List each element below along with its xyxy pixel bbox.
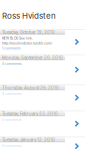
button[interactable]: Monday, September 20, 2010 [0, 55, 85, 85]
button[interactable]: Tuesday, October 19, 2010 [0, 29, 85, 55]
staticText: Thursday, August 26, 2010 [2, 85, 59, 90]
staticText: 0 comments [2, 144, 22, 148]
staticText: http://rosshvidsten.tumblr.com/ [2, 41, 52, 45]
staticText: 0 comments [2, 92, 22, 96]
staticText: NEW BLOG See link. [2, 36, 33, 40]
staticText: 4 comments [2, 62, 22, 66]
staticText: 1 comments [2, 46, 21, 50]
button[interactable]: Thursday, August 26, 2010 [0, 85, 85, 111]
staticText: Monday, September 20, 2010 [2, 55, 63, 60]
button[interactable]: Tuesday, February 23, 2010 [0, 111, 85, 137]
staticText: Tuesday, October 19, 2010 [2, 30, 55, 35]
staticText: Tuesday, January 12, 2010 [2, 137, 55, 142]
button[interactable]: Tuesday, January 12, 2010 [0, 137, 85, 153]
staticText: 0 comments [2, 118, 22, 122]
staticText: Ross Hvidsten [2, 11, 56, 21]
staticText: Tuesday, February 23, 2010 [2, 111, 58, 116]
